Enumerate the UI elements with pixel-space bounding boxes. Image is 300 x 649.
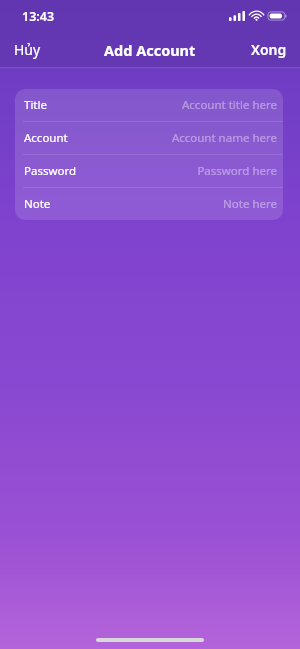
staticText: Account	[24, 130, 68, 146]
button[interactable]: Hủy	[0, 34, 55, 65]
staticText: Hủy	[14, 40, 41, 59]
staticText: Account name here	[171, 130, 277, 146]
button[interactable]: Xong	[238, 34, 300, 65]
button[interactable]: Password	[15, 155, 283, 188]
staticText: Xong	[251, 40, 287, 59]
staticText: Note	[24, 196, 51, 212]
staticText: Account title here	[181, 97, 277, 113]
staticText: 13:43	[22, 8, 55, 25]
button[interactable]: Title	[15, 89, 283, 122]
staticText: Password	[24, 163, 77, 179]
other: Cellular signal	[229, 11, 245, 21]
staticText: Note here	[223, 196, 277, 212]
other: Wi-Fi	[250, 11, 263, 21]
staticText: Add Account	[104, 40, 196, 60]
other: Battery	[268, 11, 287, 21]
button[interactable]: Account	[15, 122, 283, 155]
staticText: Password here	[197, 163, 277, 179]
button[interactable]: Note	[15, 188, 283, 220]
staticText: Title	[24, 97, 47, 113]
